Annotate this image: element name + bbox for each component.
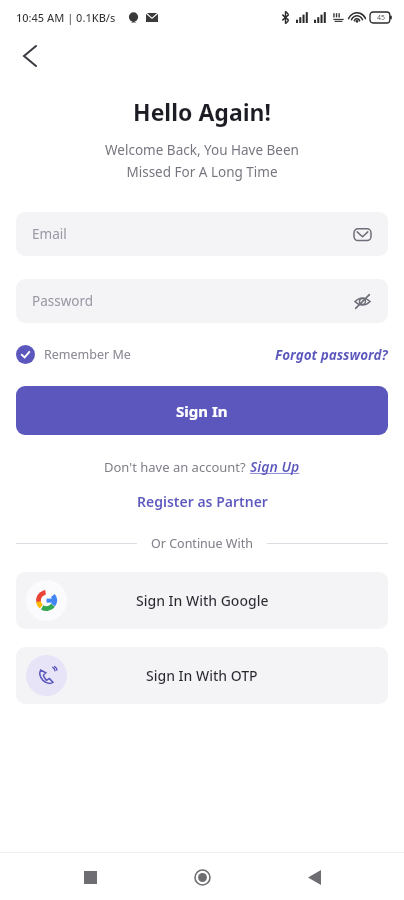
button[interactable]: Sign Up: [250, 457, 300, 476]
staticText: Sign In: [176, 401, 228, 421]
staticText: Hello Again!: [0, 96, 404, 127]
button[interactable]: Sign In With Google: [16, 572, 388, 629]
button[interactable]: Forgot password?: [275, 346, 388, 364]
staticText: Email: [32, 225, 353, 243]
button[interactable]: Back: [292, 855, 336, 899]
button[interactable]: Home: [180, 855, 224, 899]
staticText: Welcome Back, You Have Been Missed For A…: [0, 141, 404, 181]
staticText: Sign Up: [250, 457, 300, 476]
staticText: Sign In With Google: [136, 591, 269, 610]
staticText: Or Continue With: [151, 535, 253, 552]
staticText: Remember Me: [44, 346, 131, 363]
button[interactable]: Register as Partner: [0, 492, 404, 511]
button[interactable]: Recent apps: [68, 855, 112, 899]
staticText: Sign In With OTP: [146, 666, 258, 685]
staticText: Password: [32, 292, 353, 310]
staticText: Forgot password?: [275, 346, 388, 364]
staticText: 10:45 AM | 0.1KB/s: [16, 10, 116, 25]
button[interactable]: Password: [16, 279, 388, 323]
staticText: Register as Partner: [137, 492, 268, 511]
button[interactable]: Sign In: [16, 386, 388, 435]
button[interactable]: Email: [16, 212, 388, 256]
staticText: Don't have an account?: [104, 458, 250, 476]
staticText: 45: [377, 13, 386, 23]
button[interactable]: Remember Me: [16, 345, 131, 364]
button[interactable]: Back: [8, 34, 52, 78]
button[interactable]: Sign In With OTP: [16, 647, 388, 704]
